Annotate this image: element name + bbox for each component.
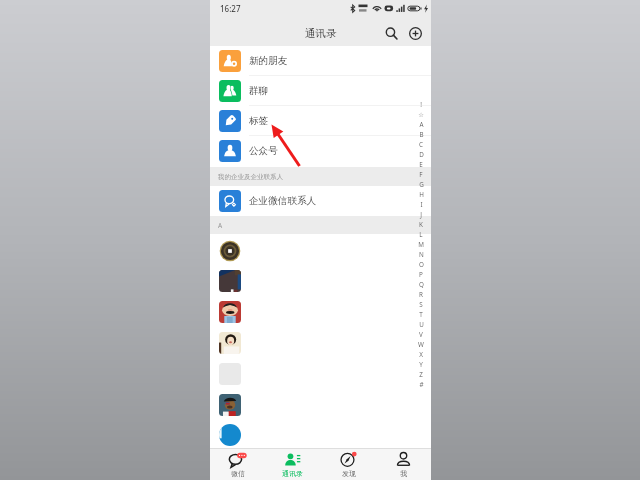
staticText: W: [418, 340, 424, 349]
staticText: J: [420, 210, 422, 219]
staticText: K: [419, 220, 423, 229]
staticText: 标签: [249, 115, 269, 127]
staticText: Z: [419, 370, 423, 379]
staticText: U: [419, 320, 424, 329]
button[interactable]: 企业微信联系人: [210, 186, 431, 216]
button[interactable]: Add: [406, 24, 425, 43]
button[interactable]: 新的朋友: [210, 46, 431, 76]
button[interactable]: [219, 394, 241, 416]
staticText: ☆: [418, 111, 424, 118]
staticText: 公众号: [249, 145, 278, 157]
staticText: S: [419, 300, 423, 309]
staticText: 通讯录: [282, 469, 303, 478]
button[interactable]: 公众号: [210, 136, 431, 166]
button[interactable]: 发现: [321, 449, 376, 480]
button[interactable]: 群聊: [210, 76, 431, 106]
staticText: M: [418, 240, 424, 249]
staticText: H: [419, 190, 424, 199]
staticText: 企业微信联系人: [249, 195, 317, 207]
button[interactable]: 标签: [210, 106, 431, 136]
staticText: 我: [400, 469, 407, 478]
staticText: #: [419, 380, 424, 389]
staticText: A: [419, 120, 424, 129]
staticText: X: [419, 350, 423, 359]
staticText: !: [420, 100, 422, 109]
staticText: 群聊: [249, 85, 269, 97]
staticText: V: [419, 330, 423, 339]
button[interactable]: 微信: [210, 449, 265, 480]
staticText: F: [419, 170, 423, 179]
staticText: 新的朋友: [249, 55, 288, 67]
staticText: 微信: [231, 469, 245, 478]
staticText: P: [419, 270, 423, 279]
button[interactable]: 通讯录: [265, 449, 320, 480]
staticText: N: [419, 250, 424, 259]
staticText: E: [419, 160, 423, 169]
staticText: B: [419, 130, 424, 139]
staticText: 16:27: [220, 3, 241, 14]
staticText: 我的企业及企业联系人: [218, 173, 283, 181]
staticText: Q: [419, 280, 424, 289]
staticText: T: [419, 310, 423, 319]
staticText: R: [419, 290, 423, 299]
staticText: L: [419, 230, 423, 239]
staticText: D: [419, 150, 424, 159]
button[interactable]: Search: [382, 24, 401, 43]
staticText: 发现: [342, 469, 356, 478]
staticText: 通讯录: [305, 27, 337, 40]
button[interactable]: [219, 424, 241, 446]
staticText: C: [419, 140, 423, 149]
staticText: O: [419, 260, 424, 269]
button[interactable]: [219, 301, 241, 323]
button[interactable]: [219, 270, 241, 292]
button[interactable]: [219, 240, 241, 262]
staticText: G: [419, 180, 424, 189]
staticText: I: [420, 200, 423, 209]
staticText: Y: [419, 360, 423, 369]
button[interactable]: 我: [376, 449, 431, 480]
button[interactable]: [219, 332, 241, 354]
staticText: A: [218, 221, 223, 230]
